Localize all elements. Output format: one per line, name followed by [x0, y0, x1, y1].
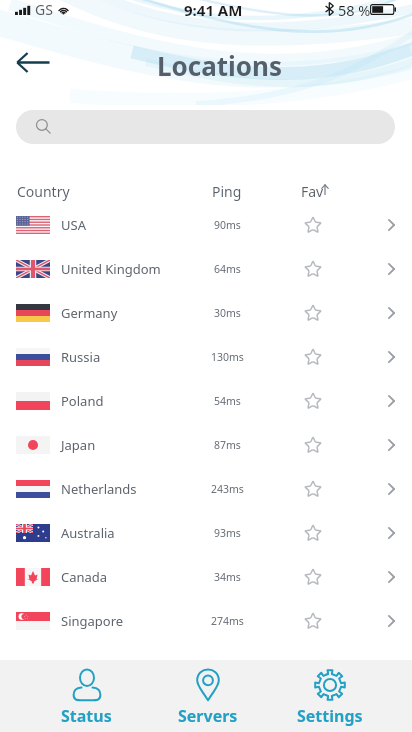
staticText: Singapore — [61, 612, 124, 630]
staticText: 58 % — [338, 0, 371, 20]
button[interactable]: Russia — [0, 335, 412, 379]
staticText: 87ms — [214, 438, 241, 452]
button[interactable]: Poland — [0, 379, 412, 423]
staticText: Netherlands — [61, 480, 137, 498]
button[interactable]: Singapore — [0, 599, 412, 643]
button[interactable]: Back — [10, 40, 55, 84]
button[interactable]: USA — [0, 203, 412, 247]
staticText: 34ms — [214, 570, 241, 584]
button[interactable]: Servers — [147, 660, 269, 732]
staticText: Germany — [61, 304, 118, 322]
staticText: 130ms — [211, 350, 244, 364]
staticText: Fav — [301, 182, 324, 201]
staticText: Country — [17, 182, 70, 201]
button[interactable]: Japan — [0, 423, 412, 467]
button[interactable]: Favourite Netherlands — [291, 467, 335, 511]
button[interactable]: Favourite United Kingdom — [291, 247, 335, 291]
staticText: Canada — [61, 568, 108, 586]
staticText: Russia — [61, 348, 101, 366]
button[interactable]: Germany — [0, 291, 412, 335]
staticText: Australia — [61, 524, 115, 542]
staticText: 54ms — [214, 394, 241, 408]
staticText: USA — [61, 216, 86, 234]
button[interactable]: Australia — [0, 511, 412, 555]
staticText: 274ms — [211, 614, 244, 628]
button[interactable]: Favourite Germany — [291, 291, 335, 335]
button[interactable]: Canada — [0, 555, 412, 599]
button[interactable]: United Kingdom — [0, 247, 412, 291]
staticText: Japan — [61, 436, 96, 454]
staticText: 9:41 AM — [184, 0, 243, 20]
staticText: Status — [61, 705, 112, 727]
button[interactable]: Netherlands — [0, 467, 412, 511]
staticText: Poland — [61, 392, 104, 410]
button[interactable]: Status — [26, 660, 147, 732]
staticText: Ping — [212, 182, 242, 201]
button[interactable]: Favourite Poland — [291, 379, 335, 423]
button[interactable]: Favourite USA — [291, 203, 335, 247]
button[interactable]: Favourite Russia — [291, 335, 335, 379]
button[interactable]: Favourite Singapore — [291, 599, 335, 643]
staticText: Locations — [157, 48, 283, 83]
staticText: 243ms — [211, 482, 244, 496]
button[interactable]: Favourite Canada — [291, 555, 335, 599]
staticText: Settings — [297, 705, 363, 727]
button[interactable] — [16, 110, 395, 144]
staticText: 90ms — [214, 218, 241, 232]
staticText: 93ms — [214, 526, 241, 540]
button[interactable]: Settings — [269, 660, 391, 732]
staticText: GS — [35, 0, 53, 19]
button[interactable]: Favourite Australia — [291, 511, 335, 555]
button[interactable]: Favourite Japan — [291, 423, 335, 467]
staticText: Servers — [178, 705, 238, 727]
staticText: United Kingdom — [61, 260, 161, 278]
staticText: 30ms — [214, 306, 241, 320]
staticText: 64ms — [214, 262, 241, 276]
